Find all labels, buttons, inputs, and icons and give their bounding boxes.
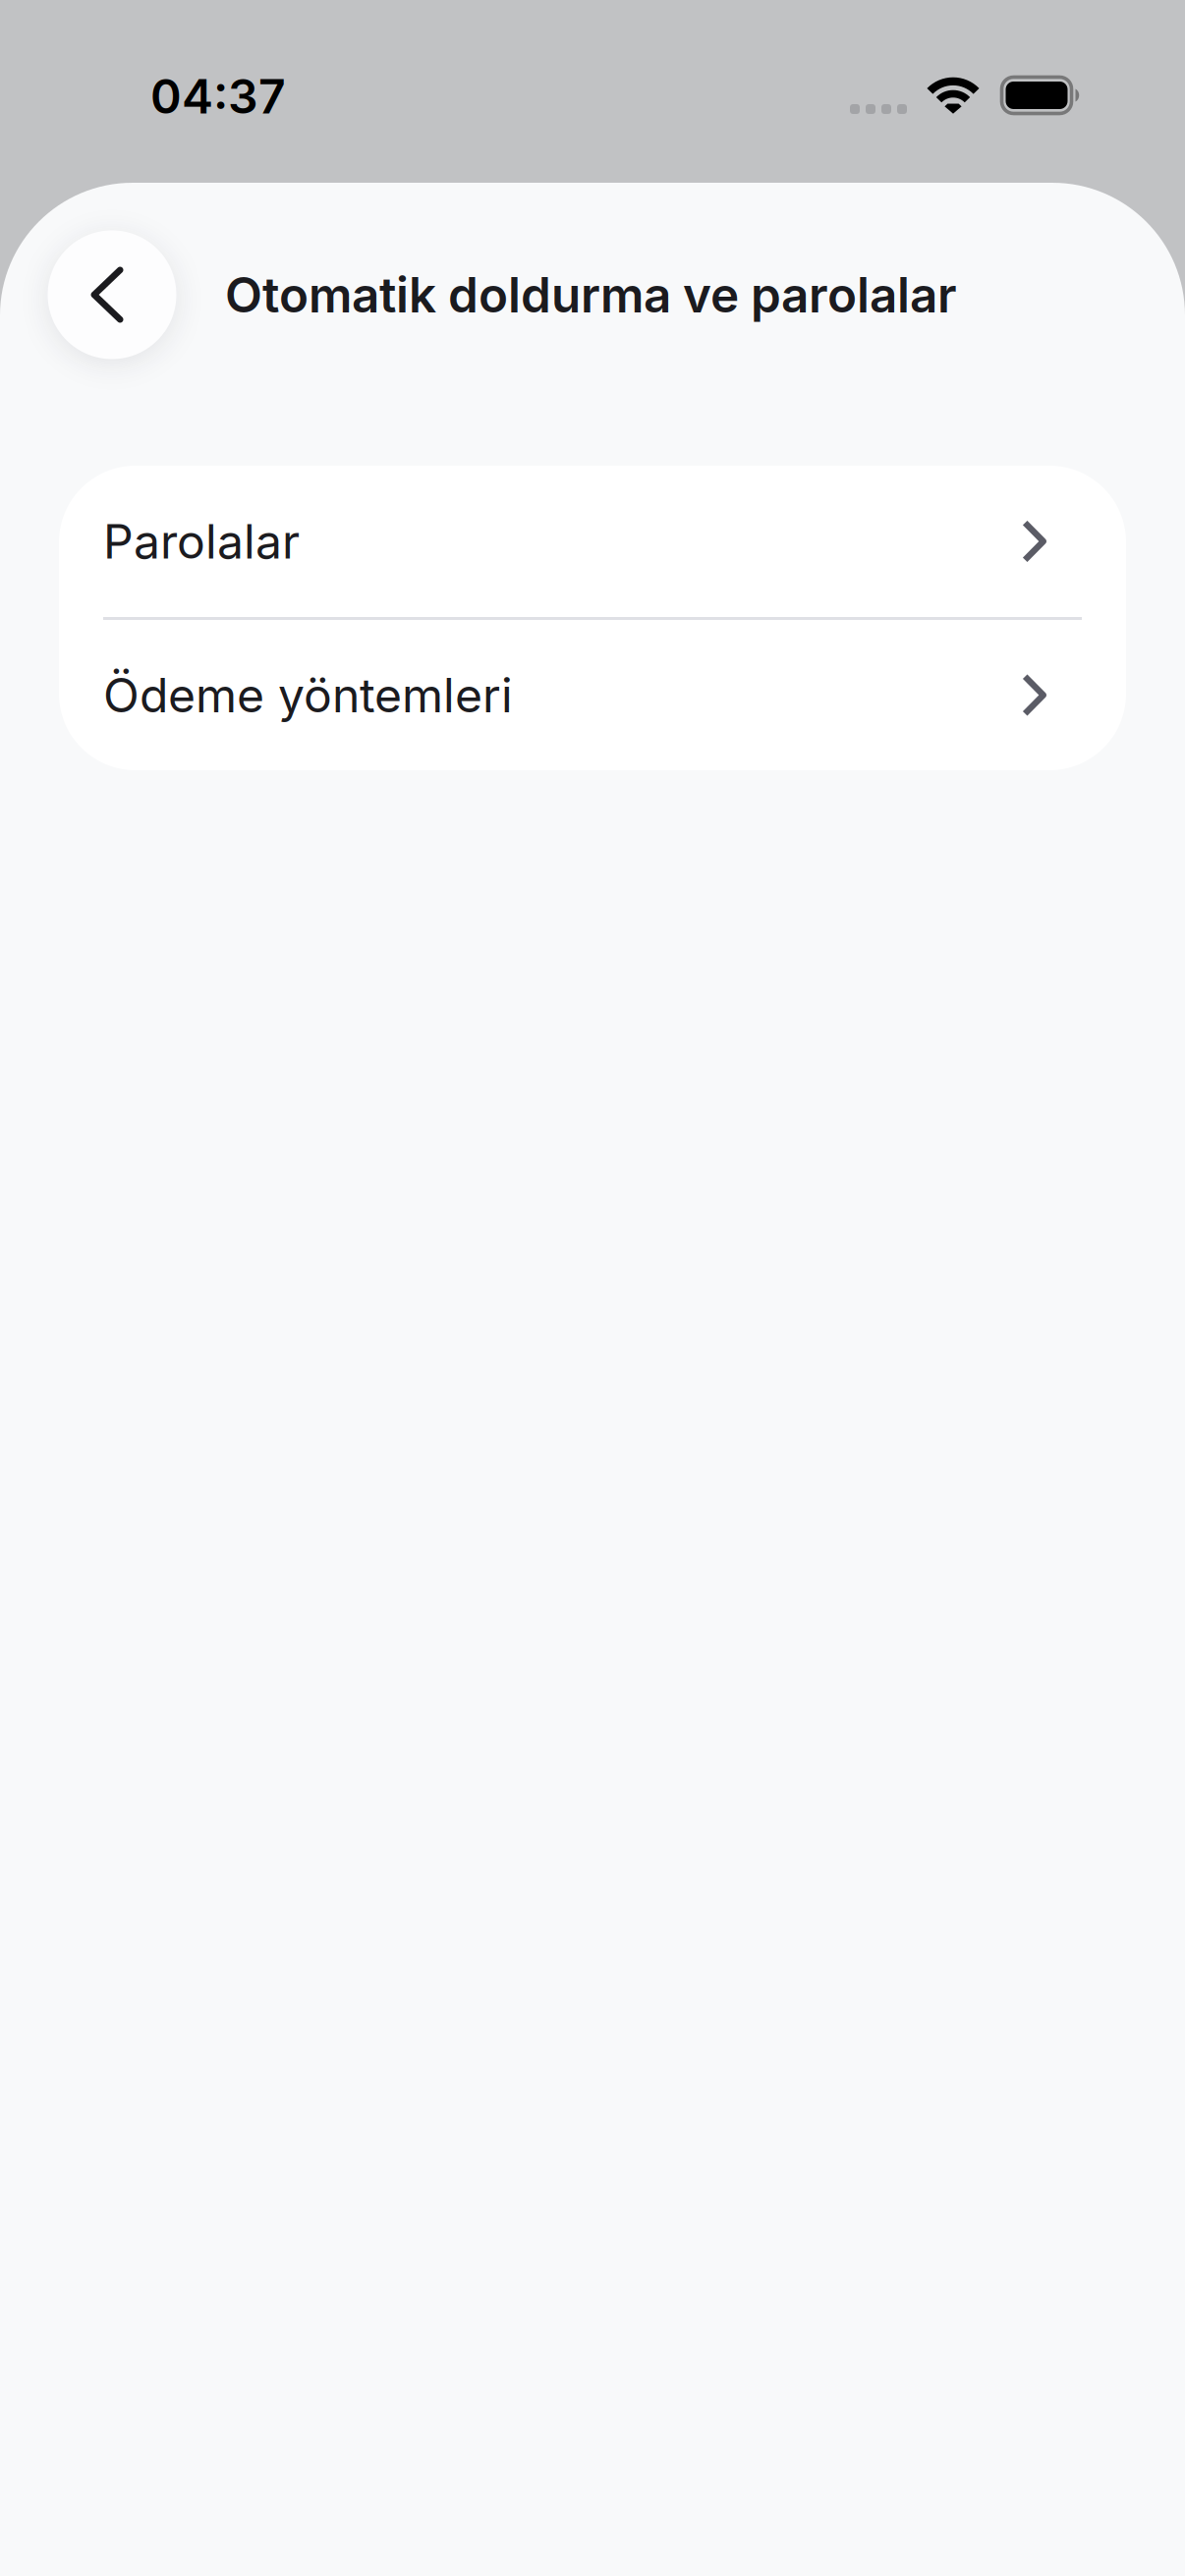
button[interactable]: Ödeme yöntemleri <box>59 620 1126 770</box>
staticText: Parolalar <box>103 513 300 570</box>
button[interactable]: Back <box>48 230 176 359</box>
button[interactable]: Parolalar <box>59 466 1126 617</box>
staticText: 04:37 <box>150 68 286 125</box>
staticText: Ödeme yöntemleri <box>103 667 513 724</box>
staticText: Otomatik doldurma ve parolalar <box>225 265 957 324</box>
